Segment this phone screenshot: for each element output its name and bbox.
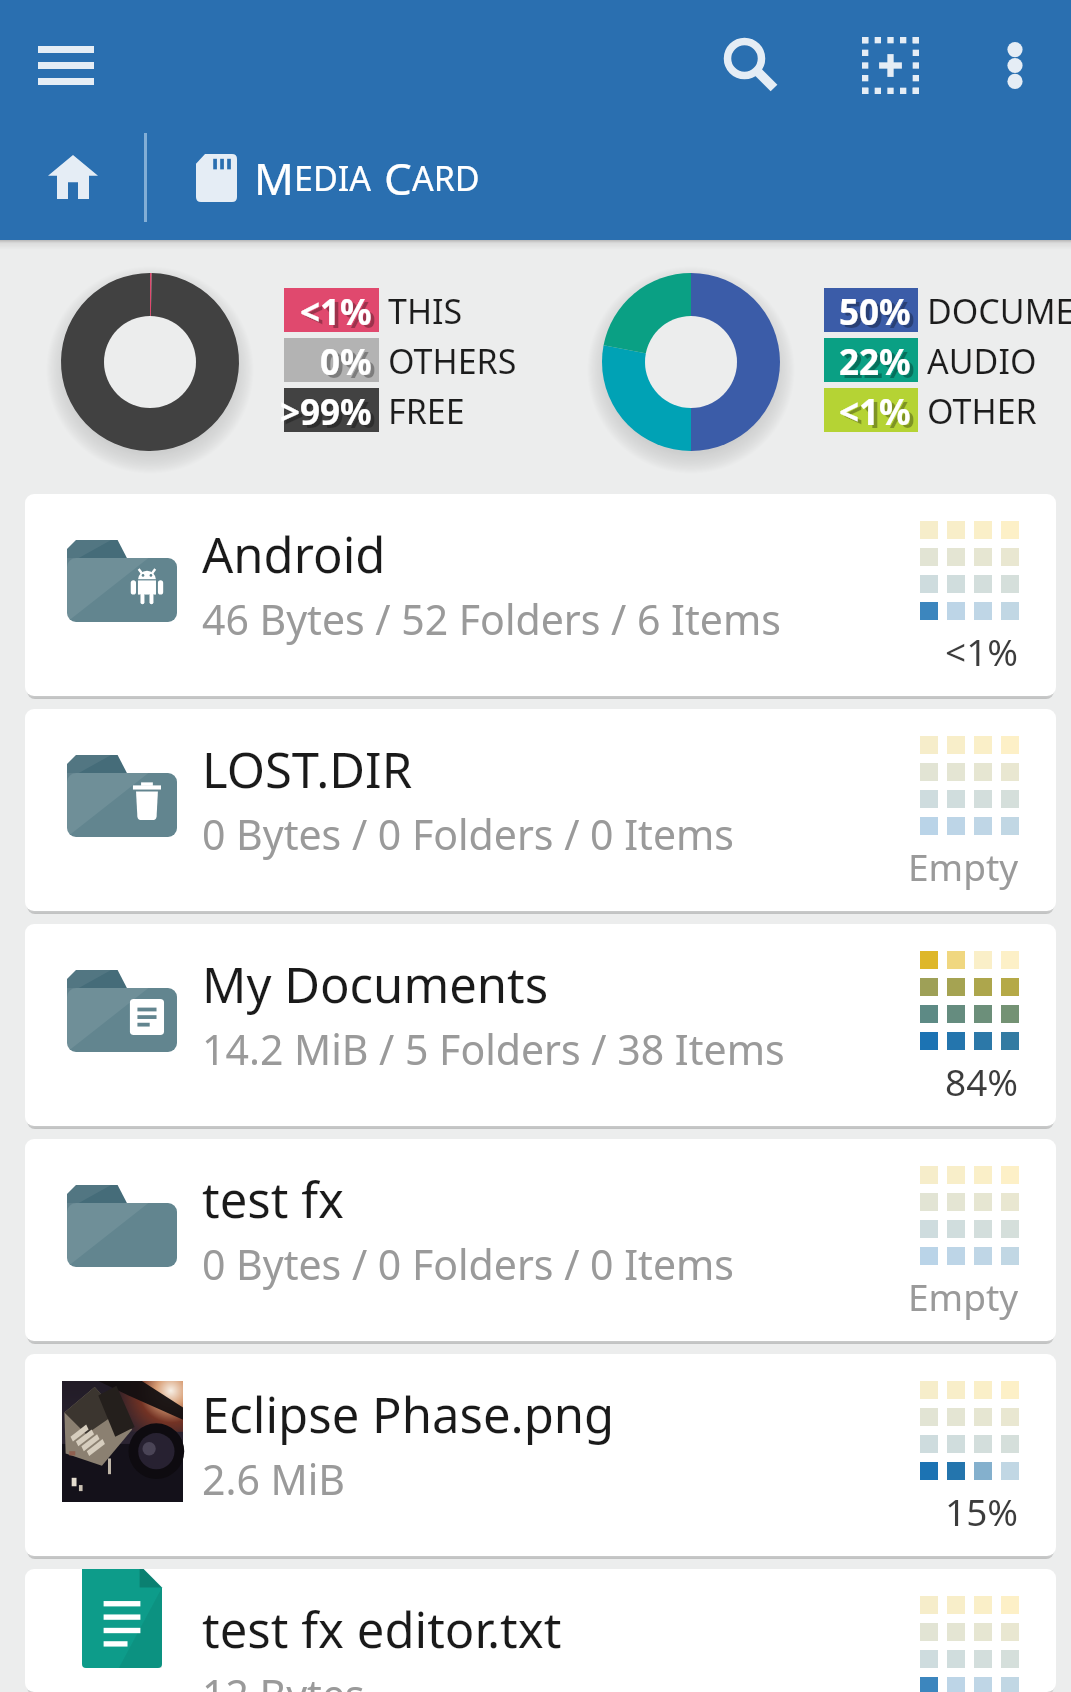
button[interactable]: Eclipse Phase.png <box>25 1354 1056 1556</box>
staticText: test fx <box>202 1166 345 1233</box>
staticText: THIS <box>388 288 463 332</box>
button[interactable]: LOST.DIR <box>25 709 1056 911</box>
staticText: >99% <box>280 388 372 432</box>
button[interactable]: Home <box>0 127 145 227</box>
button[interactable]: Select all <box>821 0 959 131</box>
staticText: M <box>254 148 294 208</box>
staticText: <1% <box>300 288 372 332</box>
staticText: <1% <box>843 391 915 435</box>
staticText: 12 Bytes <box>202 1666 365 1692</box>
staticText: 50% <box>839 288 911 332</box>
staticText: 0 Bytes / 0 Folders / 0 Items <box>202 1236 734 1292</box>
staticText: AUDIO <box>927 338 1037 382</box>
button[interactable]: Search <box>682 0 821 131</box>
button[interactable]: test fx <box>25 1139 1056 1341</box>
button[interactable]: Android <box>25 494 1056 696</box>
staticText: Empty <box>908 841 1019 891</box>
button[interactable]: M <box>178 128 480 228</box>
staticText: 14.2 MiB / 5 Folders / 38 Items <box>202 1021 785 1077</box>
staticText: 2.6 MiB <box>202 1451 345 1507</box>
staticText: 15% <box>945 1486 1019 1536</box>
button[interactable]: More options <box>959 0 1071 131</box>
staticText: DOCUMENTS <box>927 288 1071 332</box>
staticText: 46 Bytes / 52 Folders / 6 Items <box>202 591 781 647</box>
staticText: 22% <box>839 338 911 382</box>
staticText: Empty <box>908 1271 1019 1321</box>
staticText: test fx editor.txt <box>202 1596 562 1663</box>
staticText: 84% <box>945 1056 1019 1106</box>
button[interactable]: test fx editor.txt <box>25 1569 1056 1692</box>
staticText: Eclipse Phase.png <box>202 1381 615 1448</box>
staticText: 0% <box>324 341 376 385</box>
button[interactable]: Menu <box>0 0 132 131</box>
staticText: 0 Bytes / 0 Folders / 0 Items <box>202 806 734 862</box>
staticText: ARD <box>412 155 480 201</box>
button[interactable]: My Documents <box>25 924 1056 1126</box>
staticText: 22% <box>843 341 915 385</box>
staticText: EDIA <box>294 155 371 201</box>
staticText: 50% <box>843 291 915 335</box>
staticText: Android <box>202 521 386 588</box>
staticText: <1% <box>945 626 1019 676</box>
staticText: 0% <box>320 338 372 382</box>
staticText: My Documents <box>202 951 549 1018</box>
staticText: LOST.DIR <box>202 736 413 803</box>
staticText: OTHER <box>927 388 1037 432</box>
staticText: <1% <box>839 388 911 432</box>
staticText: >99% <box>284 391 376 435</box>
staticText: OTHERS <box>388 338 517 382</box>
staticText: FREE <box>388 388 465 432</box>
staticText: <1% <box>304 291 376 335</box>
staticText: C <box>384 148 412 208</box>
